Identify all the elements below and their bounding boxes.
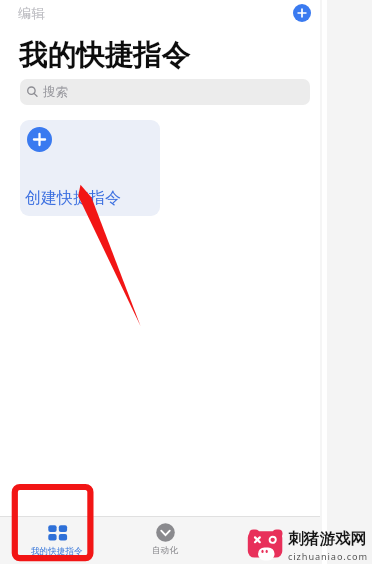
staticText: 自动化	[152, 545, 178, 556]
staticText: 创建快捷指令	[25, 188, 121, 208]
staticText: 刺猪游戏网	[288, 529, 366, 549]
button[interactable]: 自动化	[131, 525, 199, 556]
button[interactable]: 编辑	[12, 1, 51, 26]
staticText: 我的快捷指令	[31, 546, 83, 557]
staticText: 我的快捷指令	[19, 38, 190, 74]
staticText: cizhuaniao.com	[288, 550, 368, 563]
button[interactable]: 我的快捷指令	[23, 525, 91, 557]
button[interactable]: Add shortcut	[293, 4, 311, 22]
staticText: 编辑	[18, 5, 45, 22]
staticText: 搜索	[43, 84, 68, 100]
button[interactable]: 创建快捷指令	[20, 120, 160, 216]
button[interactable]: 搜索	[20, 79, 310, 105]
